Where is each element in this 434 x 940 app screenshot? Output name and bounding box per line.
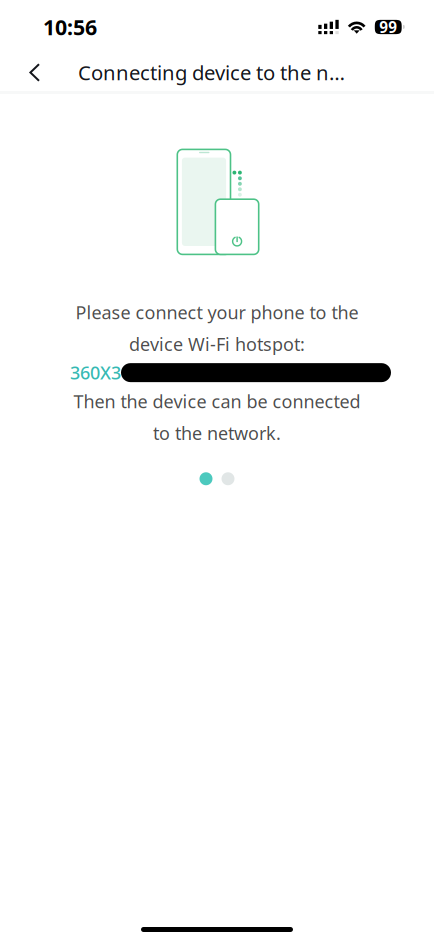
staticText: device Wi-Fi hotspot: [129, 332, 305, 356]
staticText: Please connect your phone to the [75, 300, 358, 324]
staticText: 360X3 [70, 360, 121, 385]
staticText: Connecting device to the n… [78, 59, 345, 86]
staticText: to the network. [153, 421, 281, 445]
staticText: Then the device can be connected [73, 389, 360, 413]
button[interactable]: Back [13, 48, 57, 96]
staticText: 99 [379, 17, 397, 37]
staticText: 10:56 [43, 12, 97, 42]
